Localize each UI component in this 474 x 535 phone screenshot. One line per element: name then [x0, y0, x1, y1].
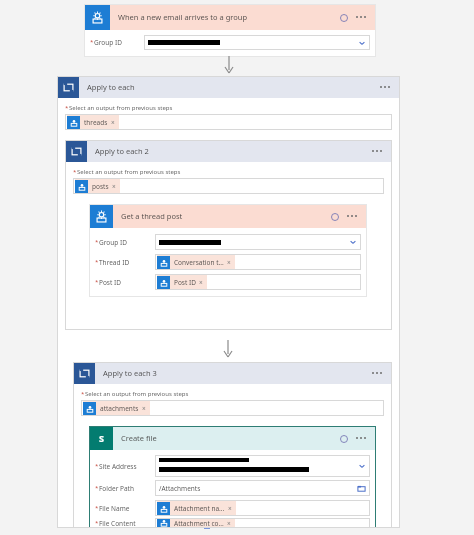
staticText: Group ID [99, 238, 127, 247]
staticText: Thread ID [99, 258, 130, 267]
button[interactable]: When a new email arrives to a group [84, 4, 376, 30]
staticText: Select an output from previous steps [85, 390, 189, 398]
staticText: Create file [121, 433, 157, 443]
staticText: When a new email arrives to a group [118, 12, 248, 22]
staticText: Attachment co... [174, 519, 224, 528]
button[interactable]: Post ID [155, 274, 361, 290]
staticText: Apply to each [87, 82, 135, 92]
staticText: × [199, 278, 203, 287]
staticText: × [112, 182, 116, 191]
button[interactable]: Help [330, 212, 339, 221]
staticText: × [142, 404, 146, 413]
staticText: S [99, 432, 104, 444]
button[interactable]: More commands [378, 82, 392, 92]
staticText: * [95, 238, 99, 246]
staticText: * [95, 258, 99, 266]
staticText: Attachment na... [174, 504, 225, 513]
staticText: × [111, 118, 115, 127]
button[interactable]: threads [65, 114, 392, 130]
button[interactable] [144, 35, 370, 50]
button[interactable]: Attachment co... [155, 518, 370, 528]
staticText: * [90, 38, 94, 46]
staticText: attachments [100, 404, 139, 413]
staticText: threads [84, 118, 108, 127]
staticText: Apply to each 3 [103, 368, 157, 378]
button[interactable]: More commands [370, 368, 384, 378]
staticText: Apply to each 2 [95, 146, 149, 156]
button[interactable]: Apply to each 2 [65, 140, 392, 162]
staticText: Conversation t... [174, 258, 224, 267]
staticText: * [73, 168, 77, 176]
staticText: Folder Path [99, 484, 134, 493]
button[interactable]: Help [339, 13, 348, 22]
button[interactable]: More commands [354, 433, 368, 443]
staticText: Select an output from previous steps [77, 168, 181, 176]
staticText: * [95, 519, 99, 527]
staticText: * [65, 104, 69, 112]
staticText: × [227, 258, 231, 267]
button[interactable]: Apply to each [57, 76, 400, 98]
staticText: * [95, 462, 99, 470]
button[interactable]: S [89, 426, 376, 450]
staticText: File Name [99, 504, 130, 513]
button[interactable]: posts [73, 178, 384, 194]
staticText: × [227, 519, 231, 528]
button[interactable] [155, 234, 361, 250]
staticText: Select an output from previous steps [69, 104, 173, 112]
staticText: * [81, 390, 85, 398]
staticText: /Attachments [159, 484, 201, 493]
staticText: File Content [99, 519, 136, 528]
staticText: * [95, 484, 99, 492]
staticText: posts [92, 182, 109, 191]
staticText: × [228, 504, 232, 513]
staticText: Group ID [94, 38, 122, 47]
staticText: Post ID [174, 278, 196, 287]
staticText: * [95, 504, 99, 512]
staticText: Site Address [99, 462, 137, 471]
button[interactable]: More commands [354, 12, 368, 22]
button[interactable]: More commands [345, 211, 359, 221]
button[interactable]: More commands [370, 146, 384, 156]
button[interactable]: Conversation t... [155, 254, 361, 270]
button[interactable]: attachments [81, 400, 384, 416]
button[interactable]: /Attachments [155, 480, 370, 496]
staticText: Get a thread post [121, 211, 183, 221]
staticText: * [95, 278, 99, 286]
staticText: Post ID [99, 278, 121, 287]
button[interactable] [155, 455, 370, 477]
button[interactable]: Help [339, 434, 348, 443]
button[interactable]: Apply to each 3 [73, 362, 392, 384]
button[interactable]: Get a thread post [89, 204, 367, 228]
button[interactable]: Attachment na... [155, 500, 370, 516]
